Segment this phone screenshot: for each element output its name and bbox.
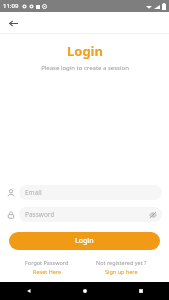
staticText: Login <box>67 42 103 60</box>
button[interactable]: Recents <box>113 282 169 300</box>
button[interactable]: Home <box>57 282 113 300</box>
staticText: 11:09 <box>3 2 19 10</box>
staticText: Reset Here <box>33 268 62 275</box>
staticText: Login <box>75 236 94 246</box>
button[interactable]: Not registered yet ? <box>84 259 159 275</box>
button[interactable]: Email <box>7 185 162 200</box>
button[interactable]: Show password <box>148 210 157 219</box>
staticText: Please login to create a session <box>41 64 129 72</box>
staticText: Password <box>25 210 55 219</box>
staticText: Email <box>25 188 42 197</box>
staticText: Forgot Password <box>25 259 69 266</box>
button[interactable]: Password <box>7 207 162 222</box>
button[interactable]: Forgot Password <box>10 259 84 275</box>
button[interactable]: Back <box>5 15 21 31</box>
staticText: Sign up here <box>105 268 138 275</box>
button[interactable]: Back <box>0 282 57 300</box>
staticText: Not registered yet ? <box>96 259 147 266</box>
button[interactable]: Login <box>9 232 160 250</box>
